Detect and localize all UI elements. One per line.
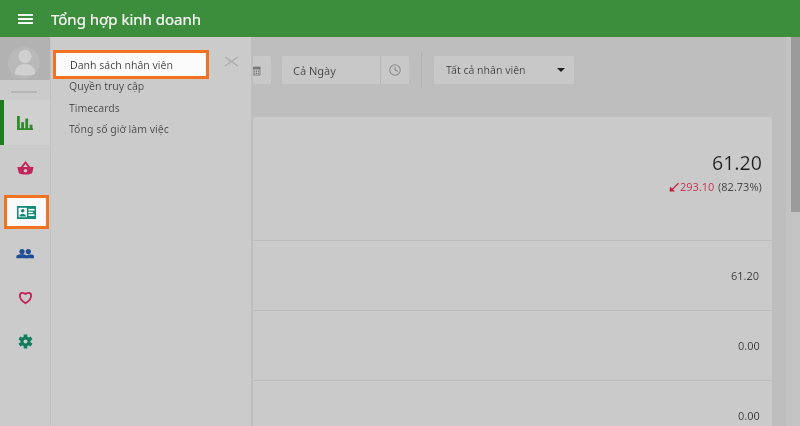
button[interactable]: 61.20	[253, 240, 772, 310]
staticText: Cả Ngày	[293, 63, 336, 78]
staticText: 0.00	[738, 408, 760, 423]
staticText: 61.20	[731, 268, 760, 283]
button[interactable]: Cả Ngày	[293, 56, 380, 84]
staticText: 293.10	[680, 179, 715, 194]
button[interactable]: Products	[0, 149, 50, 187]
button[interactable]: Timecards	[50, 97, 251, 119]
button[interactable]: Pick time	[381, 56, 409, 84]
button[interactable]: Quyền truy cập	[50, 75, 251, 97]
staticText: (82.73%)	[718, 179, 762, 194]
button[interactable]: Open navigation menu	[10, 0, 40, 37]
button[interactable]: Customers	[0, 235, 50, 273]
button[interactable]: Tổng số giờ làm việc	[50, 118, 251, 140]
staticText: 61.20	[712, 149, 762, 176]
button[interactable]: 0.00	[253, 380, 772, 426]
button[interactable]: Danh sách nhân viên	[56, 53, 206, 76]
button[interactable]: Employees	[7, 198, 46, 226]
button[interactable]: Settings	[0, 322, 50, 360]
staticText: Quyền truy cập	[69, 79, 145, 93]
button[interactable]: Tất cả nhân viên	[434, 56, 574, 84]
button[interactable]: Pick date	[253, 56, 271, 84]
staticText: Tổng hợp kinh doanh	[51, 9, 201, 29]
button[interactable]: 0.00	[253, 310, 772, 380]
staticText: Tổng số giờ làm việc	[69, 122, 169, 136]
button[interactable]: 61.20	[253, 117, 772, 240]
button[interactable]: Loyalty	[0, 278, 50, 316]
staticText: Timecards	[69, 101, 120, 115]
button[interactable]: Reports	[0, 100, 50, 145]
staticText: Danh sách nhân viên	[70, 58, 173, 72]
button[interactable]: Close	[219, 49, 243, 73]
staticText: 0.00	[738, 338, 760, 353]
staticText: Tất cả nhân viên	[446, 63, 526, 77]
